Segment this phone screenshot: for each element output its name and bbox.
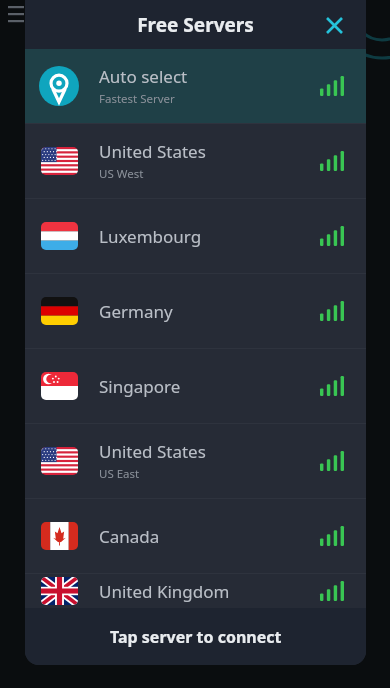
- button[interactable]: Germany: [25, 274, 366, 348]
- staticText: Luxembourg: [99, 225, 202, 248]
- staticText: Canada: [99, 525, 160, 548]
- button[interactable]: Tap server to connect: [25, 608, 366, 665]
- staticText: US East: [99, 466, 140, 482]
- staticText: Fastest Server: [99, 91, 175, 107]
- button[interactable]: Singapore: [25, 349, 366, 423]
- staticText: United Kingdom: [99, 580, 230, 603]
- staticText: Free Servers: [137, 12, 254, 38]
- button[interactable]: United States: [25, 424, 366, 498]
- button[interactable]: Canada: [25, 499, 366, 573]
- staticText: United States: [99, 140, 206, 163]
- staticText: Singapore: [99, 375, 181, 398]
- staticText: Tap server to connect: [110, 626, 282, 648]
- staticText: Germany: [99, 300, 173, 323]
- button[interactable]: Luxembourg: [25, 199, 366, 273]
- button[interactable]: Auto select: [25, 49, 366, 123]
- staticText: United States: [99, 440, 206, 463]
- staticText: Auto select: [99, 65, 188, 88]
- staticText: US West: [99, 166, 144, 182]
- button[interactable]: Close: [316, 7, 352, 43]
- button[interactable]: United Kingdom: [25, 574, 366, 608]
- button[interactable]: United States: [25, 124, 366, 198]
